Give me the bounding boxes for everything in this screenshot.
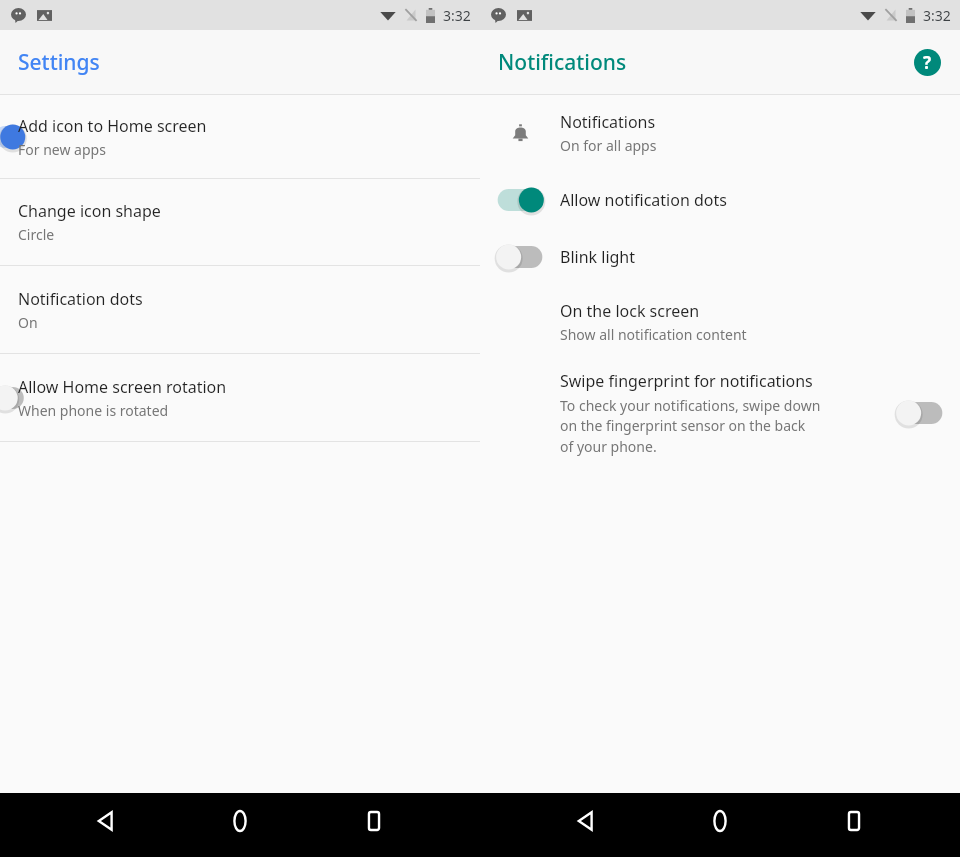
button[interactable]: Back xyxy=(558,793,614,849)
staticText: When phone is rotated xyxy=(18,401,169,420)
button[interactable]: Help xyxy=(911,46,943,78)
button[interactable]: Off xyxy=(480,228,960,285)
button[interactable]: Back xyxy=(78,793,134,849)
button[interactable]: Off xyxy=(0,354,480,441)
staticText: For new apps xyxy=(18,140,106,159)
staticText: Allow Home screen rotation xyxy=(18,376,227,398)
staticText: 3:32 xyxy=(443,6,471,25)
staticText: ? xyxy=(923,51,932,74)
staticText: Add icon to Home screen xyxy=(18,115,207,137)
button[interactable]: Notification dots xyxy=(0,266,480,353)
staticText: Notifications xyxy=(560,111,656,133)
button[interactable]: On xyxy=(493,183,547,217)
button[interactable]: Change icon shape xyxy=(0,179,480,265)
button[interactable]: Swipe fingerprint for notifications xyxy=(480,358,960,468)
button[interactable]: Off xyxy=(893,396,947,430)
staticText: Blink light xyxy=(560,246,636,268)
staticText: Notification dots xyxy=(18,288,143,310)
button[interactable]: On xyxy=(480,171,960,228)
button[interactable]: Off xyxy=(493,240,547,274)
button[interactable]: Off xyxy=(0,381,18,415)
staticText: On the lock screen xyxy=(560,300,700,322)
button[interactable]: Recents xyxy=(826,793,882,849)
staticText: Change icon shape xyxy=(18,200,161,222)
staticText: To check your notifications, swipe down … xyxy=(560,396,821,457)
button[interactable]: On xyxy=(0,120,18,154)
button[interactable]: Home xyxy=(212,793,268,849)
button[interactable]: Recents xyxy=(346,793,402,849)
button[interactable]: On xyxy=(0,95,480,178)
staticText: Circle xyxy=(18,225,55,244)
staticText: On for all apps xyxy=(560,136,657,155)
button[interactable]: On the lock screen xyxy=(480,285,960,358)
staticText: On xyxy=(18,313,38,332)
staticText: Settings xyxy=(18,48,100,77)
staticText: Notifications xyxy=(498,48,627,77)
button[interactable]: Home xyxy=(692,793,748,849)
staticText: Allow notification dots xyxy=(560,189,727,211)
staticText: Swipe fingerprint for notifications xyxy=(560,370,813,392)
button[interactable]: Notifications xyxy=(480,95,960,171)
staticText: 3:32 xyxy=(923,6,951,25)
staticText: Show all notification content xyxy=(560,325,747,344)
